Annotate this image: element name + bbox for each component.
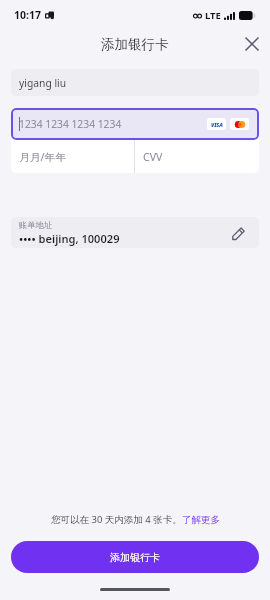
button[interactable]: Close	[240, 32, 264, 56]
button[interactable]: Edit billing address	[229, 224, 247, 242]
staticText: 10:17	[14, 8, 41, 22]
button[interactable]: 添加银行卡	[11, 541, 259, 573]
staticText: LTE	[205, 9, 221, 22]
staticText: •••• beijing, 100029	[19, 231, 120, 246]
staticText: 月月/年年	[19, 149, 67, 164]
staticText: CVV	[143, 150, 163, 164]
staticText: 1234 1234 1234 1234	[19, 117, 122, 131]
staticText: yigang liu	[19, 76, 67, 90]
button[interactable]: yigang liu	[11, 69, 259, 96]
staticText: 账单地址	[19, 220, 53, 230]
staticText: 添加银行卡	[101, 36, 169, 53]
button[interactable]: 1234 1234 1234 1234	[11, 108, 259, 140]
staticText: VISA	[211, 121, 223, 128]
button[interactable]: CVV	[135, 140, 259, 173]
staticText: 添加银行卡	[110, 551, 160, 564]
staticText: 了解更多	[182, 514, 220, 526]
button[interactable]: 了解更多	[182, 514, 220, 526]
button[interactable]: 月月/年年	[11, 140, 134, 173]
staticText: 您可以在 30 天内添加 4 张卡。	[51, 513, 182, 526]
button[interactable]: 账单地址	[11, 217, 259, 248]
